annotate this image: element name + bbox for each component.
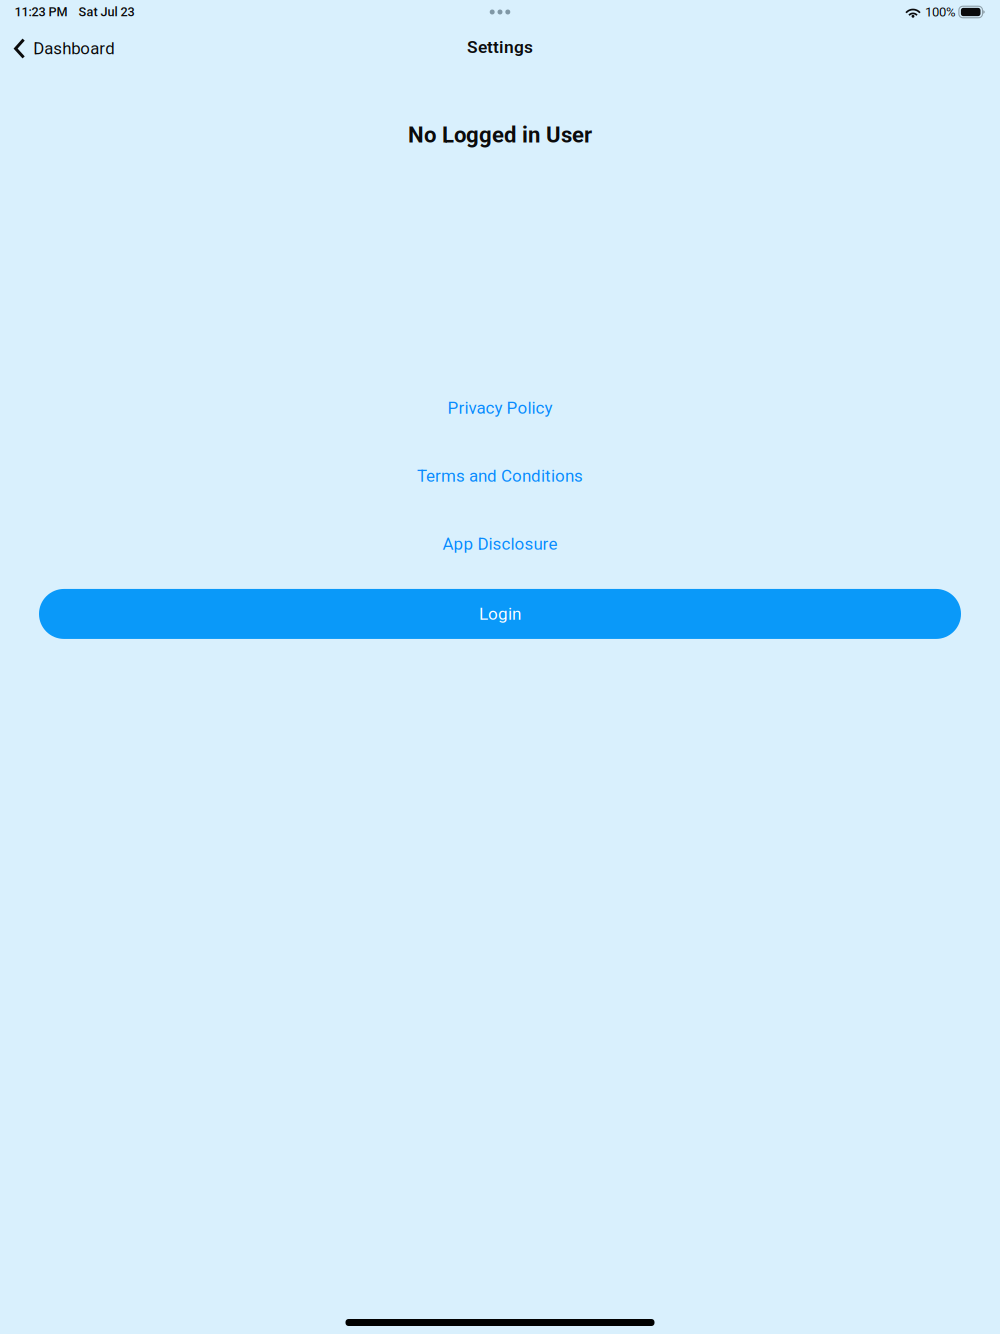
staticText: No Logged in User: [408, 122, 592, 148]
staticText: Login: [479, 604, 521, 624]
button[interactable]: Privacy Policy: [437, 390, 562, 426]
button[interactable]: Terms and Conditions: [407, 458, 593, 494]
button[interactable]: Dashboard: [0, 29, 124, 65]
staticText: Terms and Conditions: [417, 466, 583, 486]
staticText: Sat Jul 23: [78, 5, 134, 19]
staticText: 11:23 PM: [14, 5, 67, 19]
button[interactable]: App Disclosure: [432, 526, 567, 562]
staticText: App Disclosure: [442, 534, 557, 554]
staticText: Privacy Policy: [447, 398, 552, 418]
staticText: Settings: [467, 37, 533, 57]
staticText: 100%: [925, 4, 956, 20]
staticText: Dashboard: [33, 39, 114, 58]
button[interactable]: Login: [39, 589, 961, 639]
